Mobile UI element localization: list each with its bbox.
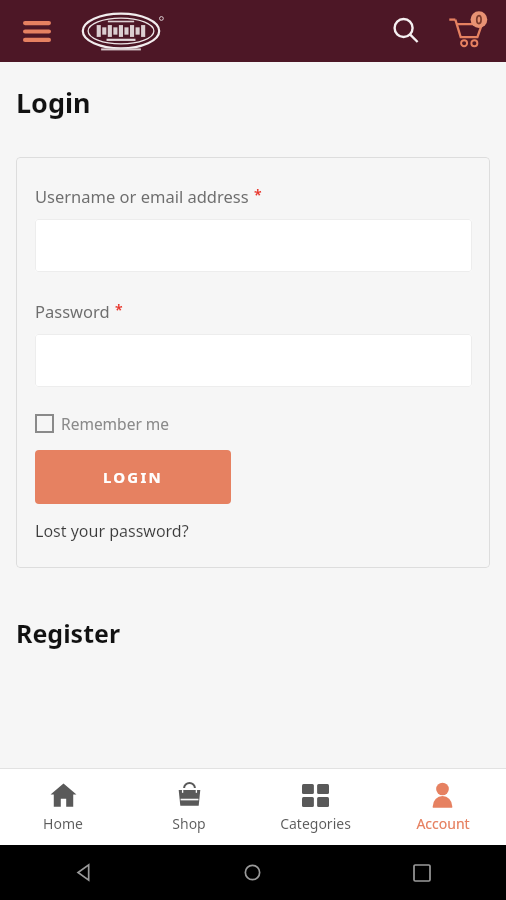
button[interactable]: Back bbox=[0, 845, 168, 900]
button[interactable] bbox=[35, 334, 472, 387]
staticText: Home bbox=[43, 814, 83, 833]
button[interactable]: Recents bbox=[337, 845, 506, 900]
button[interactable]: Categories bbox=[252, 769, 379, 845]
staticText: * bbox=[115, 300, 123, 319]
button[interactable]: Menu bbox=[14, 8, 60, 54]
button[interactable]: Remember me bbox=[35, 413, 170, 434]
staticText: Register bbox=[16, 616, 121, 650]
staticText: Password bbox=[35, 300, 110, 322]
staticText: * bbox=[254, 185, 262, 204]
button[interactable] bbox=[35, 219, 472, 272]
button[interactable]: Account bbox=[379, 769, 506, 845]
button[interactable]: Home bbox=[168, 845, 337, 900]
staticText: Lost your password? bbox=[35, 520, 189, 542]
button[interactable]: Search bbox=[382, 7, 430, 55]
staticText: Account bbox=[416, 814, 470, 833]
staticText: Username or email address bbox=[35, 185, 249, 207]
button[interactable]: Logo bbox=[72, 2, 170, 60]
staticText: Login bbox=[16, 84, 91, 121]
button[interactable]: Cart, 0 items bbox=[440, 5, 492, 57]
staticText: LOGIN bbox=[103, 467, 163, 487]
staticText: Remember me bbox=[61, 413, 170, 434]
button[interactable]: Shop bbox=[126, 769, 252, 845]
button[interactable]: Home bbox=[0, 769, 126, 845]
button[interactable]: Lost your password? bbox=[35, 520, 189, 542]
staticText: Shop bbox=[172, 814, 206, 833]
staticText: Categories bbox=[280, 814, 351, 833]
button[interactable]: LOGIN bbox=[35, 450, 231, 504]
